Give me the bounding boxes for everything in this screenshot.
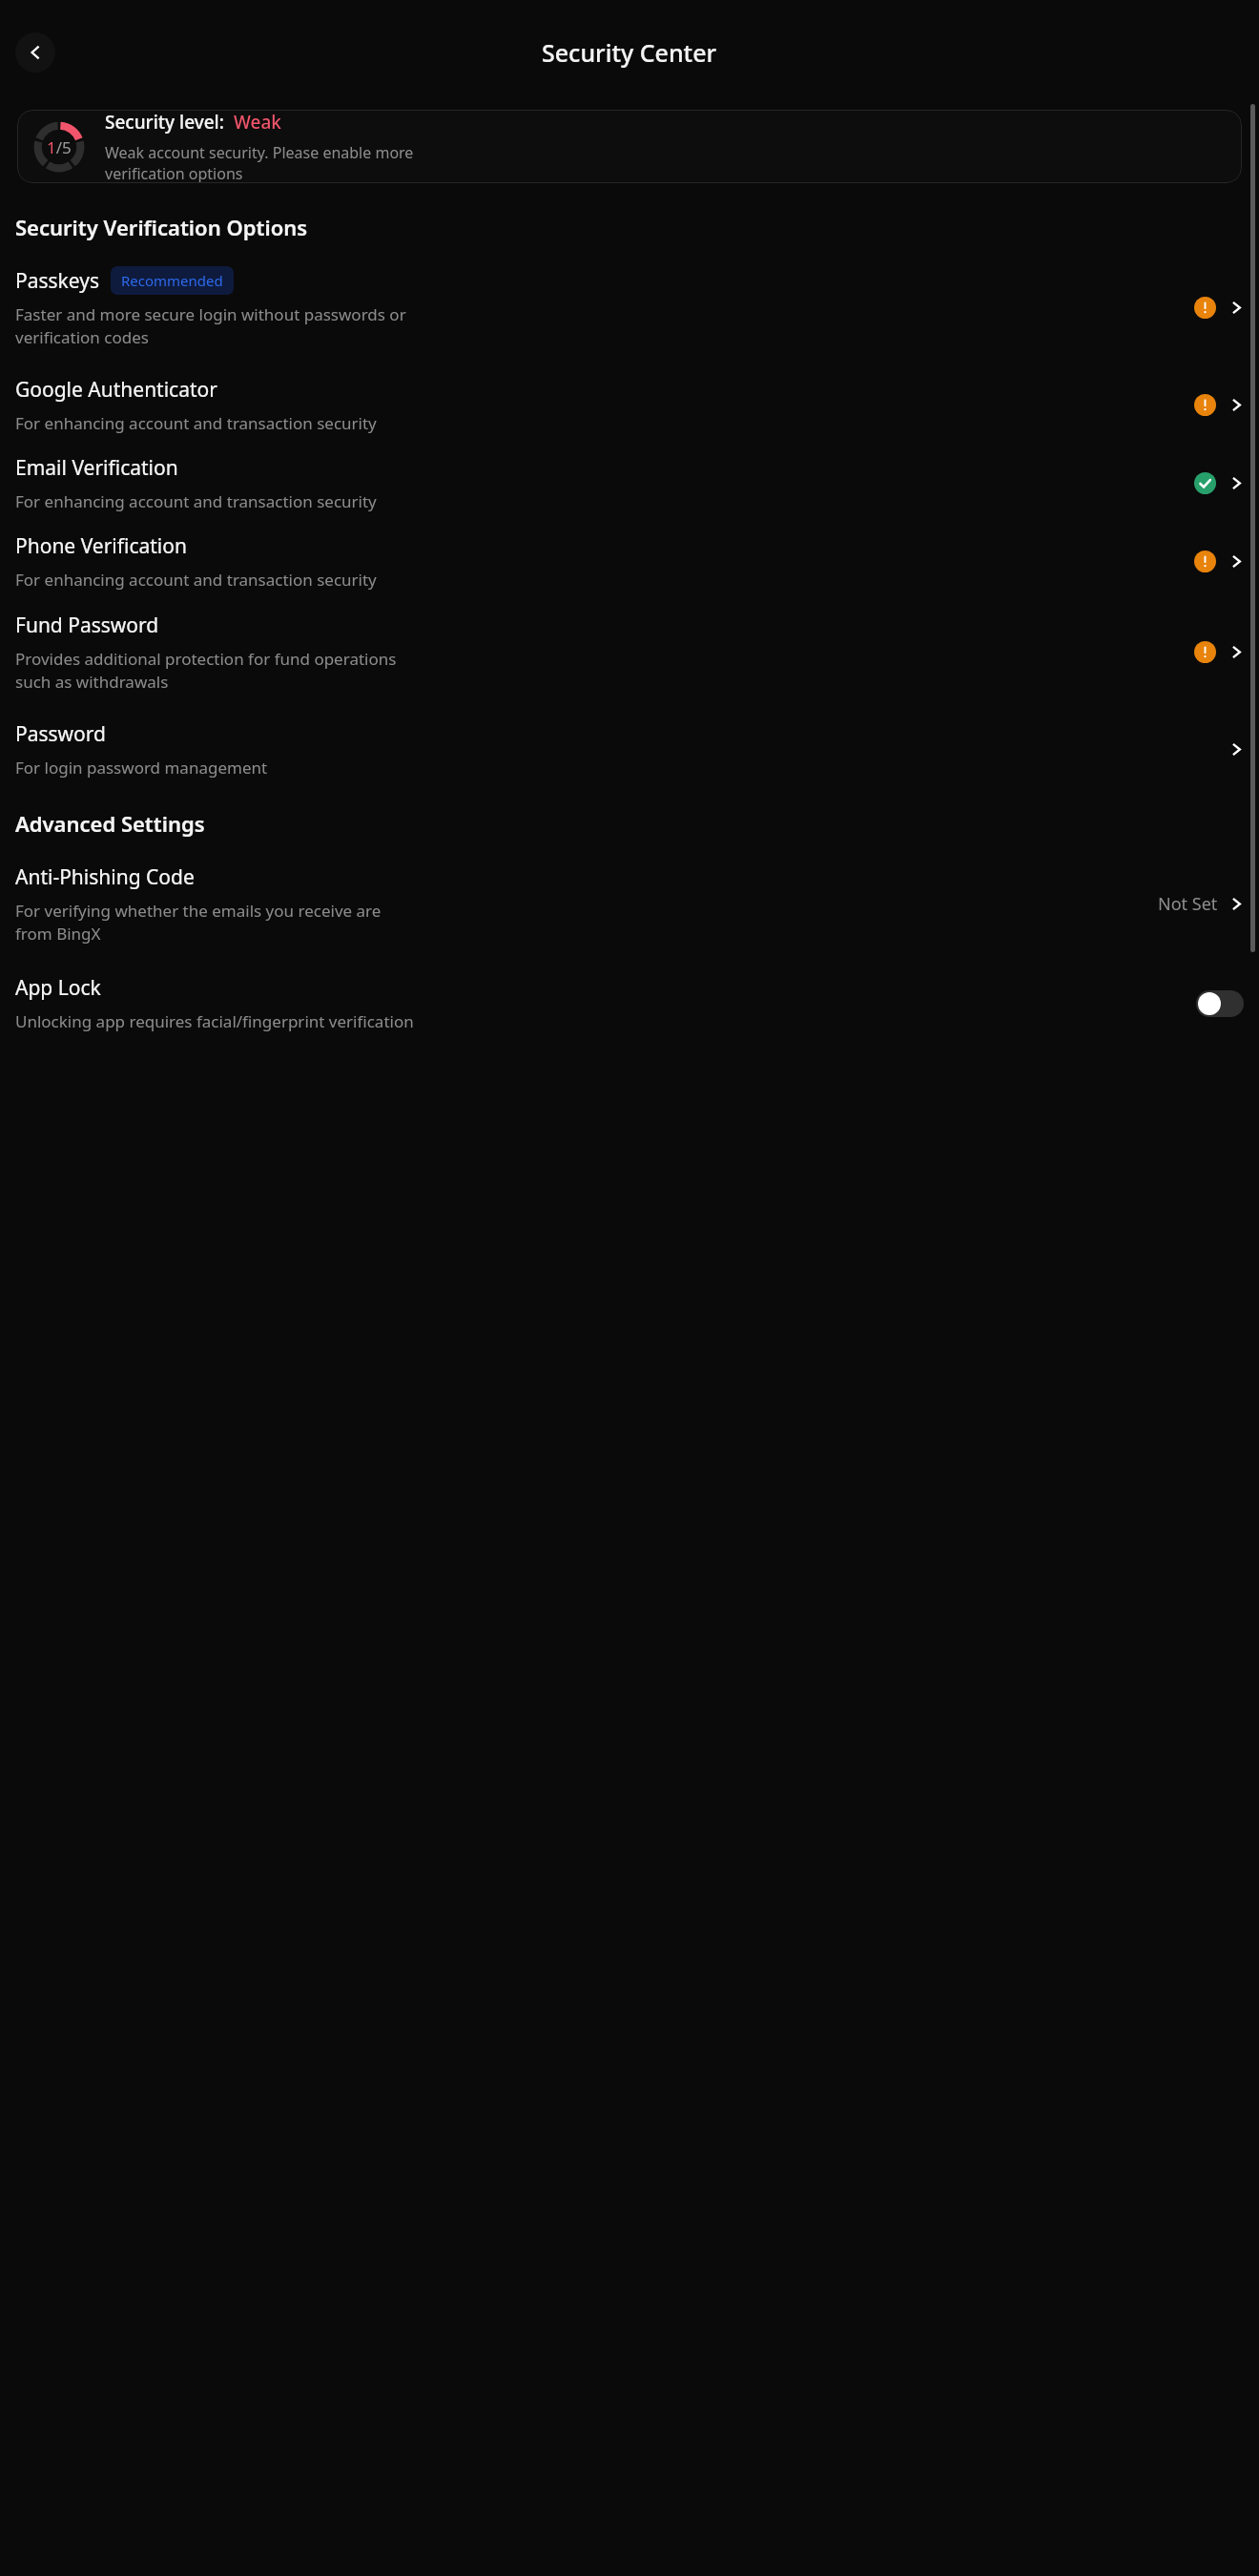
- staticText: Weak account security. Please enable mor…: [105, 142, 414, 183]
- button[interactable]: Anti-Phishing Code: [0, 863, 1259, 945]
- staticText: Not Set: [1158, 892, 1218, 916]
- button[interactable]: App Lock toggle: [1196, 990, 1244, 1017]
- staticText: Google Authenticator: [15, 376, 217, 404]
- button[interactable]: App Lock: [0, 974, 1259, 1032]
- button[interactable]: Google Authenticator: [0, 376, 1259, 434]
- staticText: Recommended: [121, 271, 223, 290]
- staticText: Security Center: [542, 36, 717, 69]
- staticText: Passkeys: [15, 267, 100, 295]
- staticText: For verifying whether the emails you rec…: [15, 900, 382, 945]
- staticText: For enhancing account and transaction se…: [15, 412, 377, 434]
- staticText: Fund Password: [15, 612, 159, 639]
- button[interactable]: Phone Verification: [0, 532, 1259, 591]
- staticText: Security Verification Options: [15, 213, 308, 241]
- button[interactable]: 1/5: [17, 110, 1242, 183]
- staticText: Provides additional protection for fund …: [15, 648, 397, 693]
- staticText: 1/5: [47, 136, 72, 158]
- staticText: For enhancing account and transaction se…: [15, 569, 377, 591]
- staticText: Anti-Phishing Code: [15, 863, 195, 891]
- button[interactable]: Fund Password: [0, 612, 1259, 693]
- staticText: For login password management: [15, 757, 268, 779]
- staticText: Email Verification: [15, 454, 178, 482]
- staticText: Unlocking app requires facial/fingerprin…: [15, 1010, 414, 1032]
- staticText: Weak: [234, 110, 281, 135]
- staticText: Phone Verification: [15, 532, 187, 560]
- button[interactable]: Email Verification: [0, 454, 1259, 512]
- staticText: Security level:: [105, 110, 224, 135]
- staticText: Faster and more secure login without pas…: [15, 303, 406, 348]
- button[interactable]: Back: [15, 32, 55, 73]
- staticText: Password: [15, 720, 106, 748]
- staticText: For enhancing account and transaction se…: [15, 490, 377, 512]
- button[interactable]: Password: [0, 720, 1259, 779]
- staticText: App Lock: [15, 974, 101, 1002]
- button[interactable]: Passkeys: [0, 266, 1259, 348]
- staticText: Advanced Settings: [15, 809, 205, 838]
